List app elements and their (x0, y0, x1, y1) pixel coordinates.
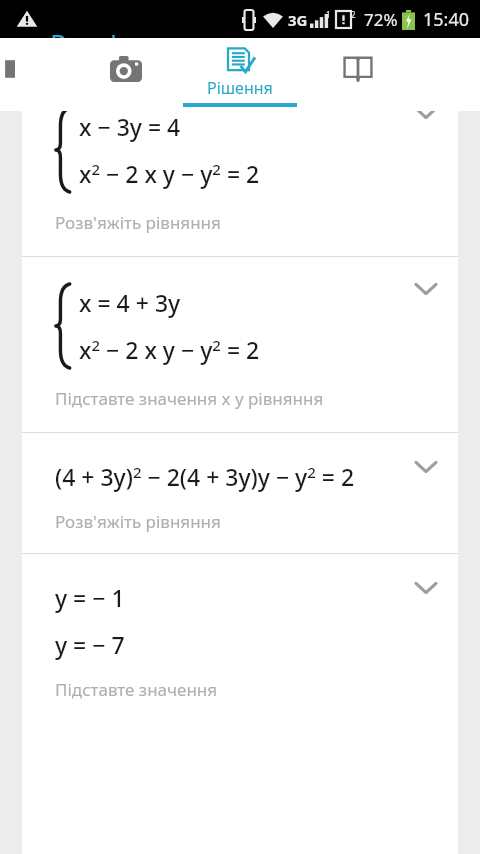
button[interactable]: Expand step (408, 271, 444, 307)
staticText: x = 4 + 3y (79, 287, 181, 318)
staticText: Підставте значення x у рівняння (55, 387, 324, 410)
staticText: Підставте значення (55, 678, 218, 701)
button[interactable]: Expand step (408, 95, 444, 131)
staticText: (4 + 3y)2 − 2(4 + 3y)y − y2 = 2 (55, 461, 355, 492)
staticText: 15:40 (423, 7, 470, 32)
button[interactable]: x − 3y = 4 (22, 75, 458, 256)
staticText: Розв'яжіть рівняння (55, 211, 221, 234)
button[interactable]: Expand step (408, 570, 444, 606)
staticText: 3G (288, 10, 308, 30)
staticText: 72% (364, 8, 398, 31)
button[interactable]: Previous tab (0, 58, 15, 80)
staticText: Рішення (207, 77, 273, 99)
staticText: 2 (351, 9, 356, 20)
staticText: y = − 1 (55, 582, 125, 613)
staticText: y = − 7 (55, 629, 125, 660)
button[interactable]: Рішення (182, 38, 298, 107)
staticText: 1 (326, 9, 331, 20)
button[interactable]: y = − 1 (22, 554, 458, 721)
button[interactable]: Camera (98, 47, 154, 103)
staticText: Розв'язання (50, 26, 210, 63)
staticText: x − 3y = 4 (79, 111, 181, 142)
button[interactable]: x = 4 + 3y (22, 257, 458, 432)
staticText: Розв'яжіть рівняння (55, 510, 221, 533)
button[interactable]: Expand step (408, 449, 444, 485)
staticText: x2 − 2 x y − y2 = 2 (79, 334, 260, 365)
button[interactable]: Dictionary (330, 47, 386, 103)
button[interactable]: (4 + 3y)2 − 2(4 + 3y)y − y2 = 2 (22, 433, 458, 553)
staticText: x2 − 2 x y − y2 = 2 (79, 158, 260, 189)
